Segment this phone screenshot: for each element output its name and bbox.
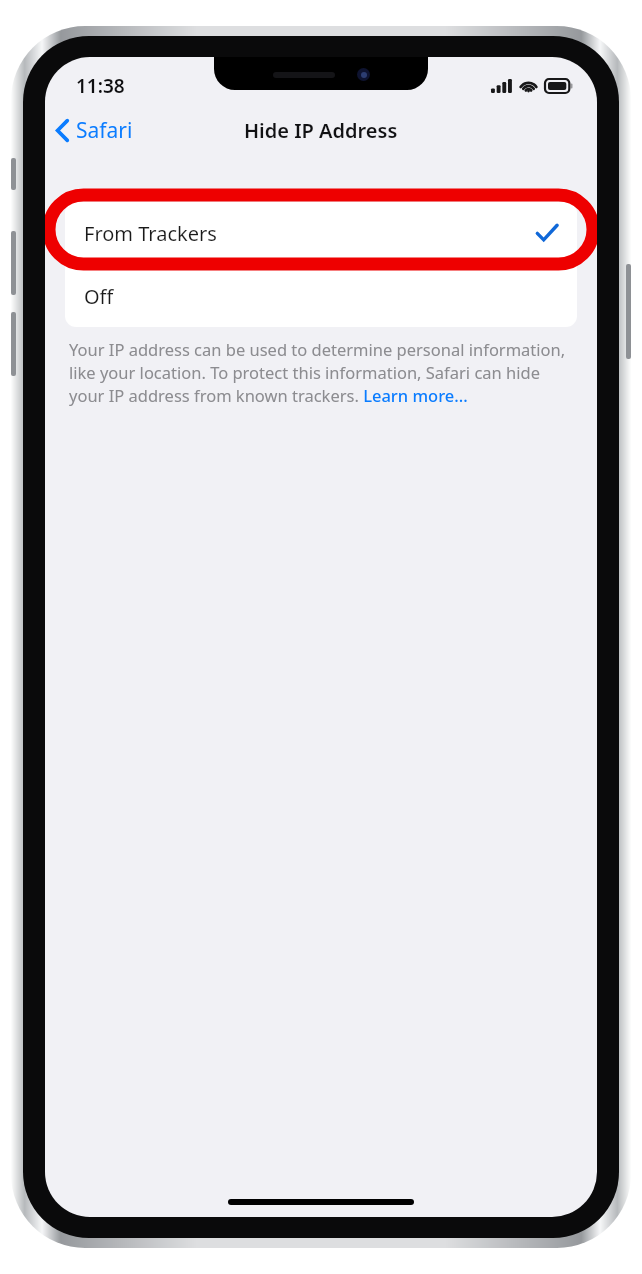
- button[interactable]: Back to Safari: [45, 109, 144, 152]
- staticText: Off: [84, 283, 114, 310]
- button[interactable]: From Trackers: [65, 202, 577, 264]
- staticText: Your IP address can be used to determine…: [69, 338, 575, 407]
- staticText: Safari: [76, 116, 133, 145]
- staticText: Hide IP Address: [244, 117, 398, 144]
- button[interactable]: Off: [65, 265, 577, 327]
- staticText: From Trackers: [84, 220, 217, 247]
- staticText: 11:38: [76, 73, 125, 99]
